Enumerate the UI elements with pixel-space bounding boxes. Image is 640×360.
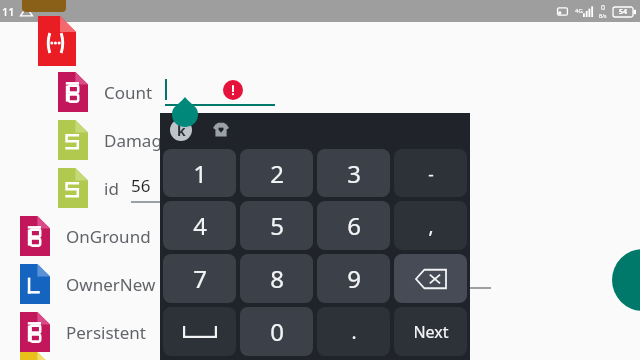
staticText: 0 [270,315,284,348]
staticText: 1 [193,157,207,190]
button[interactable]: Count [0,68,640,116]
staticText: 2 [270,157,284,190]
staticText: OwnerNew [66,273,156,296]
staticText: 7 [193,262,207,295]
button[interactable]: Damage [0,116,640,164]
staticText: Next [413,321,449,343]
staticText: 56 [131,174,151,197]
button[interactable]: Keyboard settings [170,119,192,141]
staticText: 0 [601,3,606,13]
button[interactable]: 6 [317,201,390,250]
staticText: Count [104,81,153,104]
staticText: - [428,162,434,185]
button[interactable]: Persistent [0,308,640,356]
button[interactable]: 5 [240,201,313,250]
button[interactable]: OnGround [0,212,640,260]
staticText: k [177,121,186,140]
staticText: 4 [193,209,207,242]
staticText: 9 [347,262,361,295]
staticText: Persistent [66,321,146,344]
staticText: 8 [270,262,284,295]
button[interactable]: id [0,164,640,212]
button[interactable]: Add [612,249,640,311]
staticText: id [104,177,119,200]
button[interactable]: - [394,149,467,197]
staticText: 6 [347,209,361,242]
staticText: 4G [575,7,583,15]
staticText: B/s [599,13,607,20]
button[interactable]: 2 [240,149,313,197]
button[interactable]: OwnerNew [0,260,640,308]
button[interactable]: , [394,201,467,250]
button[interactable]: Next [394,307,467,356]
button[interactable]: Stickers [210,119,232,141]
staticText: Damage [104,129,172,152]
button[interactable]: 4 [163,201,236,250]
staticText: , [428,213,434,239]
button[interactable]: 0 [240,307,313,356]
button[interactable]: 1 [163,149,236,197]
staticText: 5 [270,209,284,242]
button[interactable]: 3 [317,149,390,197]
button[interactable]: 8 [240,254,313,303]
staticText: 3 [347,157,361,190]
button[interactable]: . [317,307,390,356]
button[interactable]: 9 [317,254,390,303]
button[interactable]: 7 [163,254,236,303]
button[interactable]: Backspace [394,254,467,303]
staticText: 11 [2,4,15,19]
staticText: . [351,319,357,345]
button[interactable]: Space [163,307,236,356]
staticText: OnGround [66,225,151,248]
staticText: 54 [619,7,628,17]
